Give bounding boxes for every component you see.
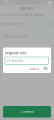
staticText: CANCEL xyxy=(29,67,39,71)
staticText: CONFIRM xyxy=(21,110,33,113)
staticText: Response window xyxy=(2,35,28,38)
button[interactable]: CANCEL xyxy=(29,67,39,71)
staticText: Receive alerts xyxy=(2,22,21,26)
staticText: 30 seconds xyxy=(7,59,23,62)
button[interactable]: OK xyxy=(43,67,47,71)
button[interactable]: Response window xyxy=(0,32,54,41)
staticText: 9:41 xyxy=(3,0,10,4)
staticText: OK xyxy=(43,67,47,71)
staticText: Choose a notification method xyxy=(2,13,44,17)
button[interactable]: CONFIRM xyxy=(3,106,51,117)
staticText: Response time xyxy=(5,51,27,55)
staticText: Options xyxy=(19,5,34,11)
button[interactable]: Receive alerts xyxy=(0,19,54,28)
staticText: ▮▮▮ xyxy=(48,1,51,4)
